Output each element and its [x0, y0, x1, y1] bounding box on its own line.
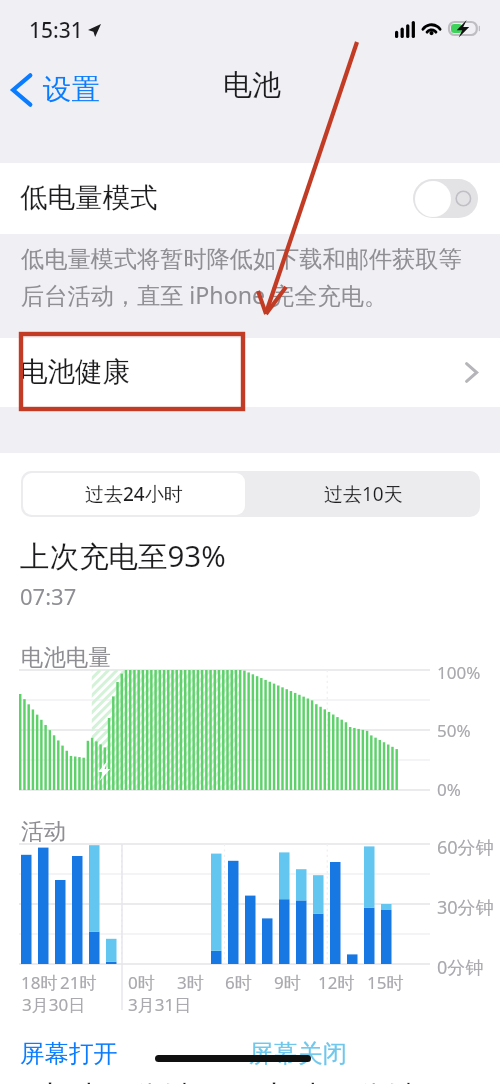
staticText: 30分钟	[437, 895, 494, 920]
staticText: 15时	[367, 971, 404, 994]
staticText: 电池电量	[21, 643, 111, 671]
staticText: 50%	[437, 719, 471, 742]
button[interactable]: 低电量模式开关	[413, 179, 478, 218]
staticText: 0时	[128, 971, 155, 994]
button[interactable]: 电池健康	[0, 338, 500, 407]
staticText: 设置	[43, 72, 100, 108]
staticText: 100%	[437, 661, 481, 684]
staticText: 0%	[437, 778, 461, 801]
staticText: 21时	[60, 971, 97, 994]
staticText: 屏幕打开	[20, 1038, 118, 1069]
staticText: 低电量模式将暂时降低如下载和邮件获取等	[21, 245, 462, 274]
staticText: 6时	[225, 971, 252, 994]
staticText: 过去24小时	[85, 481, 183, 507]
staticText: 0分钟	[437, 955, 484, 980]
staticText: 9时	[274, 971, 301, 994]
button[interactable]: 设置	[5, 66, 106, 114]
staticText: 3月30日	[22, 993, 86, 1016]
staticText: 8小时58分钟	[16, 1075, 194, 1084]
staticText: 低电量模式	[20, 181, 158, 216]
staticText: 活动	[21, 817, 66, 845]
staticText: 上次充电至93%	[20, 535, 226, 575]
staticText: 18时	[21, 971, 58, 994]
staticText: 电池健康	[20, 355, 130, 390]
staticText: 07:37	[20, 581, 77, 611]
staticText: 8小时10分钟	[240, 1075, 418, 1084]
button[interactable]: 过去10天	[247, 471, 480, 517]
staticText: 15:31	[29, 16, 83, 45]
staticText: 电池	[223, 67, 281, 104]
staticText: 60分钟	[437, 835, 494, 860]
button[interactable]: 过去24小时	[23, 473, 245, 515]
staticText: 3月31日	[128, 993, 192, 1016]
staticText: 3时	[177, 971, 204, 994]
staticText: 后台活动，直至 iPhone 完全充电。	[21, 279, 388, 311]
staticText: 屏幕关闭	[249, 1038, 347, 1069]
staticText: 12时	[318, 971, 355, 994]
button[interactable]: 低电量模式	[0, 163, 500, 234]
staticText: 过去10天	[324, 481, 403, 507]
